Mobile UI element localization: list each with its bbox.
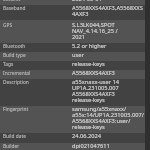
staticText: S.L3LK044,SPOT NAV_4.14.16_25 / 2021 <box>72 22 118 40</box>
button[interactable]: Fingerprint <box>0 106 145 133</box>
staticText: Baseband <box>3 5 26 11</box>
button[interactable]: Incremental <box>0 70 145 79</box>
staticText: dpi021047611 <box>72 143 110 149</box>
staticText: 5.2 or higher <box>72 43 107 49</box>
button[interactable]: Build type <box>0 52 145 61</box>
button[interactable]: Security <box>0 0 145 5</box>
staticText: a55xnaxx-user 14 UP1A.231005.007 A5568XX… <box>72 79 120 103</box>
staticText: Bluetooth <box>3 43 26 49</box>
button[interactable]: Builder <box>0 143 145 150</box>
staticText: 24.06.2024 <box>72 133 102 139</box>
button[interactable]: Description <box>0 79 145 106</box>
staticText: A5568XXS4AXF3 <box>72 70 115 76</box>
staticText: Security <box>3 0 22 1</box>
staticText: Fingerprint <box>3 106 29 112</box>
staticText: Builder <box>3 143 20 149</box>
button[interactable]: Build date <box>0 133 145 143</box>
staticText: samsung/a55xnaxx/a55x:14/UP1A.231005.007… <box>72 106 145 130</box>
button[interactable]: Tags <box>0 61 145 70</box>
staticText: Build date <box>3 133 26 139</box>
staticText: release-keys <box>72 61 105 67</box>
staticText: A5568XXS4AXF3,A5568XXS4AXF3 <box>72 5 145 17</box>
staticText: 2024-06-01 <box>72 0 102 1</box>
staticText: Description <box>3 79 29 85</box>
staticText: Tags <box>3 61 14 67</box>
staticText: GPS <box>3 22 13 28</box>
button[interactable]: Baseband <box>0 5 145 20</box>
button[interactable]: GPS <box>0 20 145 43</box>
staticText: Build type <box>3 52 26 58</box>
staticText: Incremental <box>3 70 31 76</box>
button[interactable]: Bluetooth <box>0 43 145 52</box>
staticText: user <box>72 52 84 58</box>
